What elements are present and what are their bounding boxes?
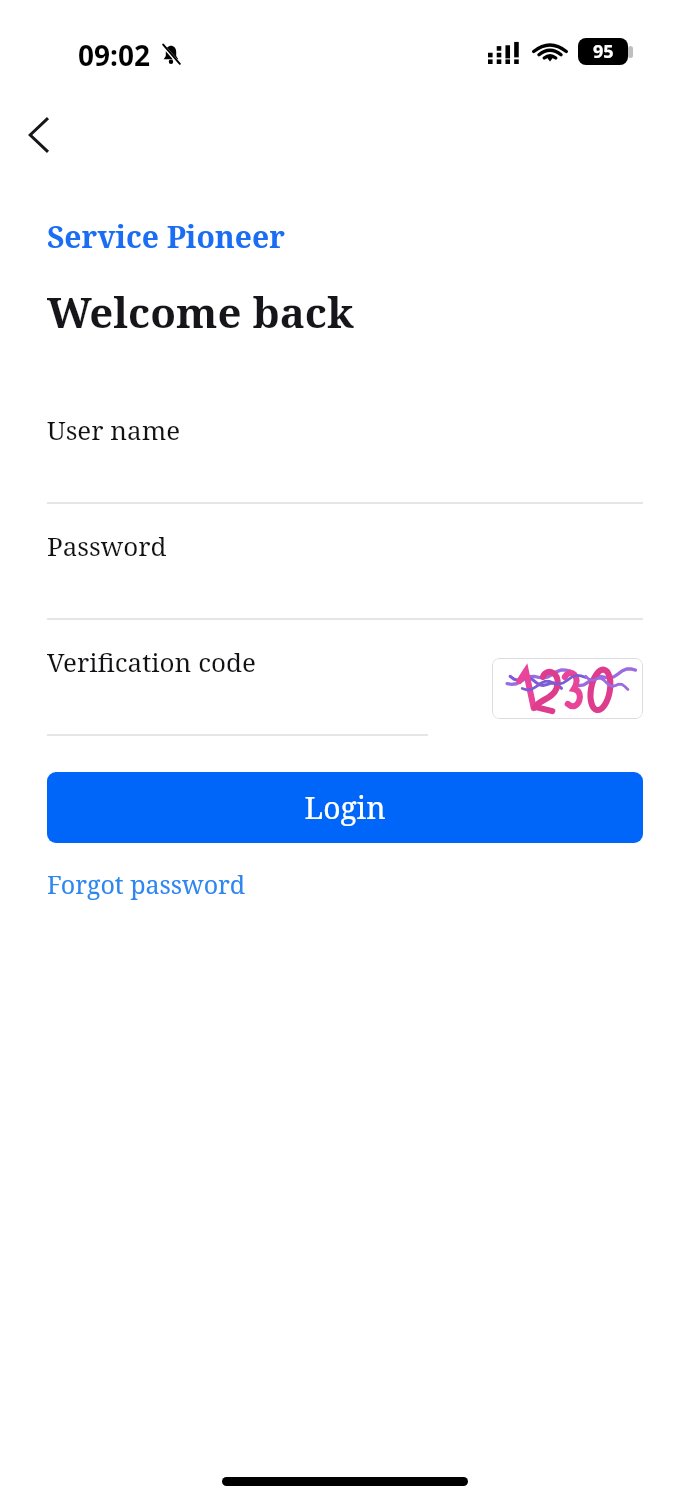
button[interactable]: Forgot password	[47, 863, 246, 905]
staticText: Login	[304, 787, 386, 828]
staticText: Verification code	[47, 644, 256, 679]
button[interactable]: Verification code	[0, 644, 690, 736]
button[interactable]: Back	[8, 104, 70, 166]
staticText: Password	[47, 528, 167, 563]
staticText: Forgot password	[47, 867, 246, 901]
staticText: User name	[47, 412, 181, 447]
staticText: 95	[593, 39, 614, 64]
button[interactable]: Refresh verification code	[492, 658, 643, 719]
button[interactable]: Password	[0, 528, 690, 620]
staticText: Service Pioneer	[47, 216, 285, 257]
button[interactable]: User name	[0, 412, 690, 504]
button[interactable]: Login	[47, 772, 643, 843]
staticText: 09:02	[78, 36, 150, 74]
staticText: Welcome back	[47, 283, 354, 340]
